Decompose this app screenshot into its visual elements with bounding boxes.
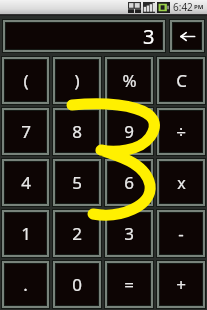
staticText: ÷ [176, 120, 186, 143]
button[interactable]: C [160, 60, 202, 101]
staticText: - [178, 222, 184, 245]
staticText: 6 [124, 171, 134, 194]
staticText: 8 [72, 120, 82, 143]
staticText: 1 [21, 222, 31, 245]
button[interactable]: 3 [108, 213, 150, 254]
button[interactable]: 0 [56, 264, 98, 305]
staticText: 3 [143, 23, 155, 49]
button[interactable]: + [160, 264, 202, 305]
staticText: C [176, 69, 187, 92]
staticText: = [124, 273, 134, 296]
button[interactable]: 1 [5, 213, 46, 254]
staticText: 6:42 [173, 0, 193, 14]
button[interactable]: 7 [5, 111, 46, 152]
button[interactable]: 6 [108, 162, 150, 203]
button[interactable]: 5 [56, 162, 98, 203]
button[interactable]: % [108, 60, 150, 101]
button[interactable]: 2 [56, 213, 98, 254]
staticText: . [23, 273, 28, 296]
staticText: 7 [21, 120, 31, 143]
button[interactable]: ( [5, 60, 46, 101]
button[interactable]: 9 [108, 111, 150, 152]
staticText: 9 [124, 120, 134, 143]
button[interactable]: = [108, 264, 150, 305]
button[interactable]: 4 [5, 162, 46, 203]
button[interactable]: ÷ [160, 111, 202, 152]
button[interactable]: Backspace [173, 23, 201, 49]
staticText: 5 [72, 171, 82, 194]
staticText: ) [74, 69, 80, 92]
button[interactable]: - [160, 213, 202, 254]
staticText: x [177, 172, 186, 194]
staticText: % [122, 69, 137, 92]
staticText: 0 [72, 273, 82, 296]
button[interactable]: . [5, 264, 46, 305]
staticText: 4 [21, 171, 31, 194]
button[interactable]: ) [56, 60, 98, 101]
staticText: PM [194, 3, 204, 11]
button[interactable]: 8 [56, 111, 98, 152]
button[interactable]: x [160, 162, 202, 203]
staticText: 3 [124, 222, 134, 245]
button[interactable]: 3 [6, 23, 162, 49]
staticText: 2 [72, 222, 82, 245]
staticText: ( [23, 69, 29, 92]
staticText: + [176, 273, 186, 296]
